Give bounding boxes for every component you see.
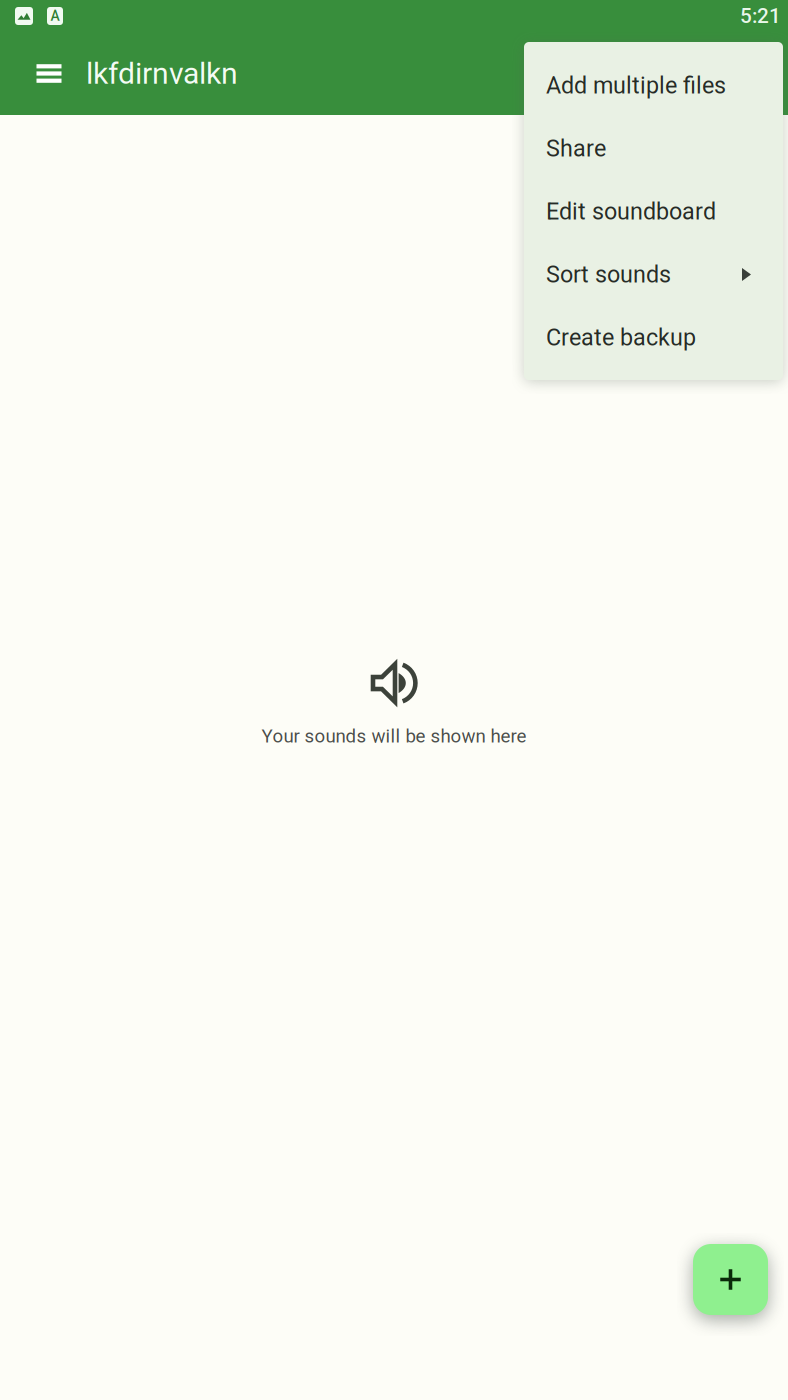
staticText: Your sounds will be shown here [261,725,526,747]
staticText: A [50,8,59,24]
staticText: lkfdirnvalkn [86,56,238,91]
staticText: Share [546,135,606,162]
staticText: Add multiple files [546,72,726,99]
button[interactable]: Add multiple files [524,54,783,117]
staticText: Create backup [546,324,696,351]
staticText: Sort sounds [546,261,671,288]
button[interactable]: Add sound [681,1232,780,1327]
staticText: Edit soundboard [546,198,716,225]
button[interactable]: Create backup [524,306,783,369]
button[interactable]: Navigation menu [19,43,79,103]
button[interactable]: Sort sounds [524,243,783,306]
button[interactable]: Edit soundboard [524,180,783,243]
button[interactable]: Share [524,117,783,180]
staticText: 5:21 [740,4,781,28]
